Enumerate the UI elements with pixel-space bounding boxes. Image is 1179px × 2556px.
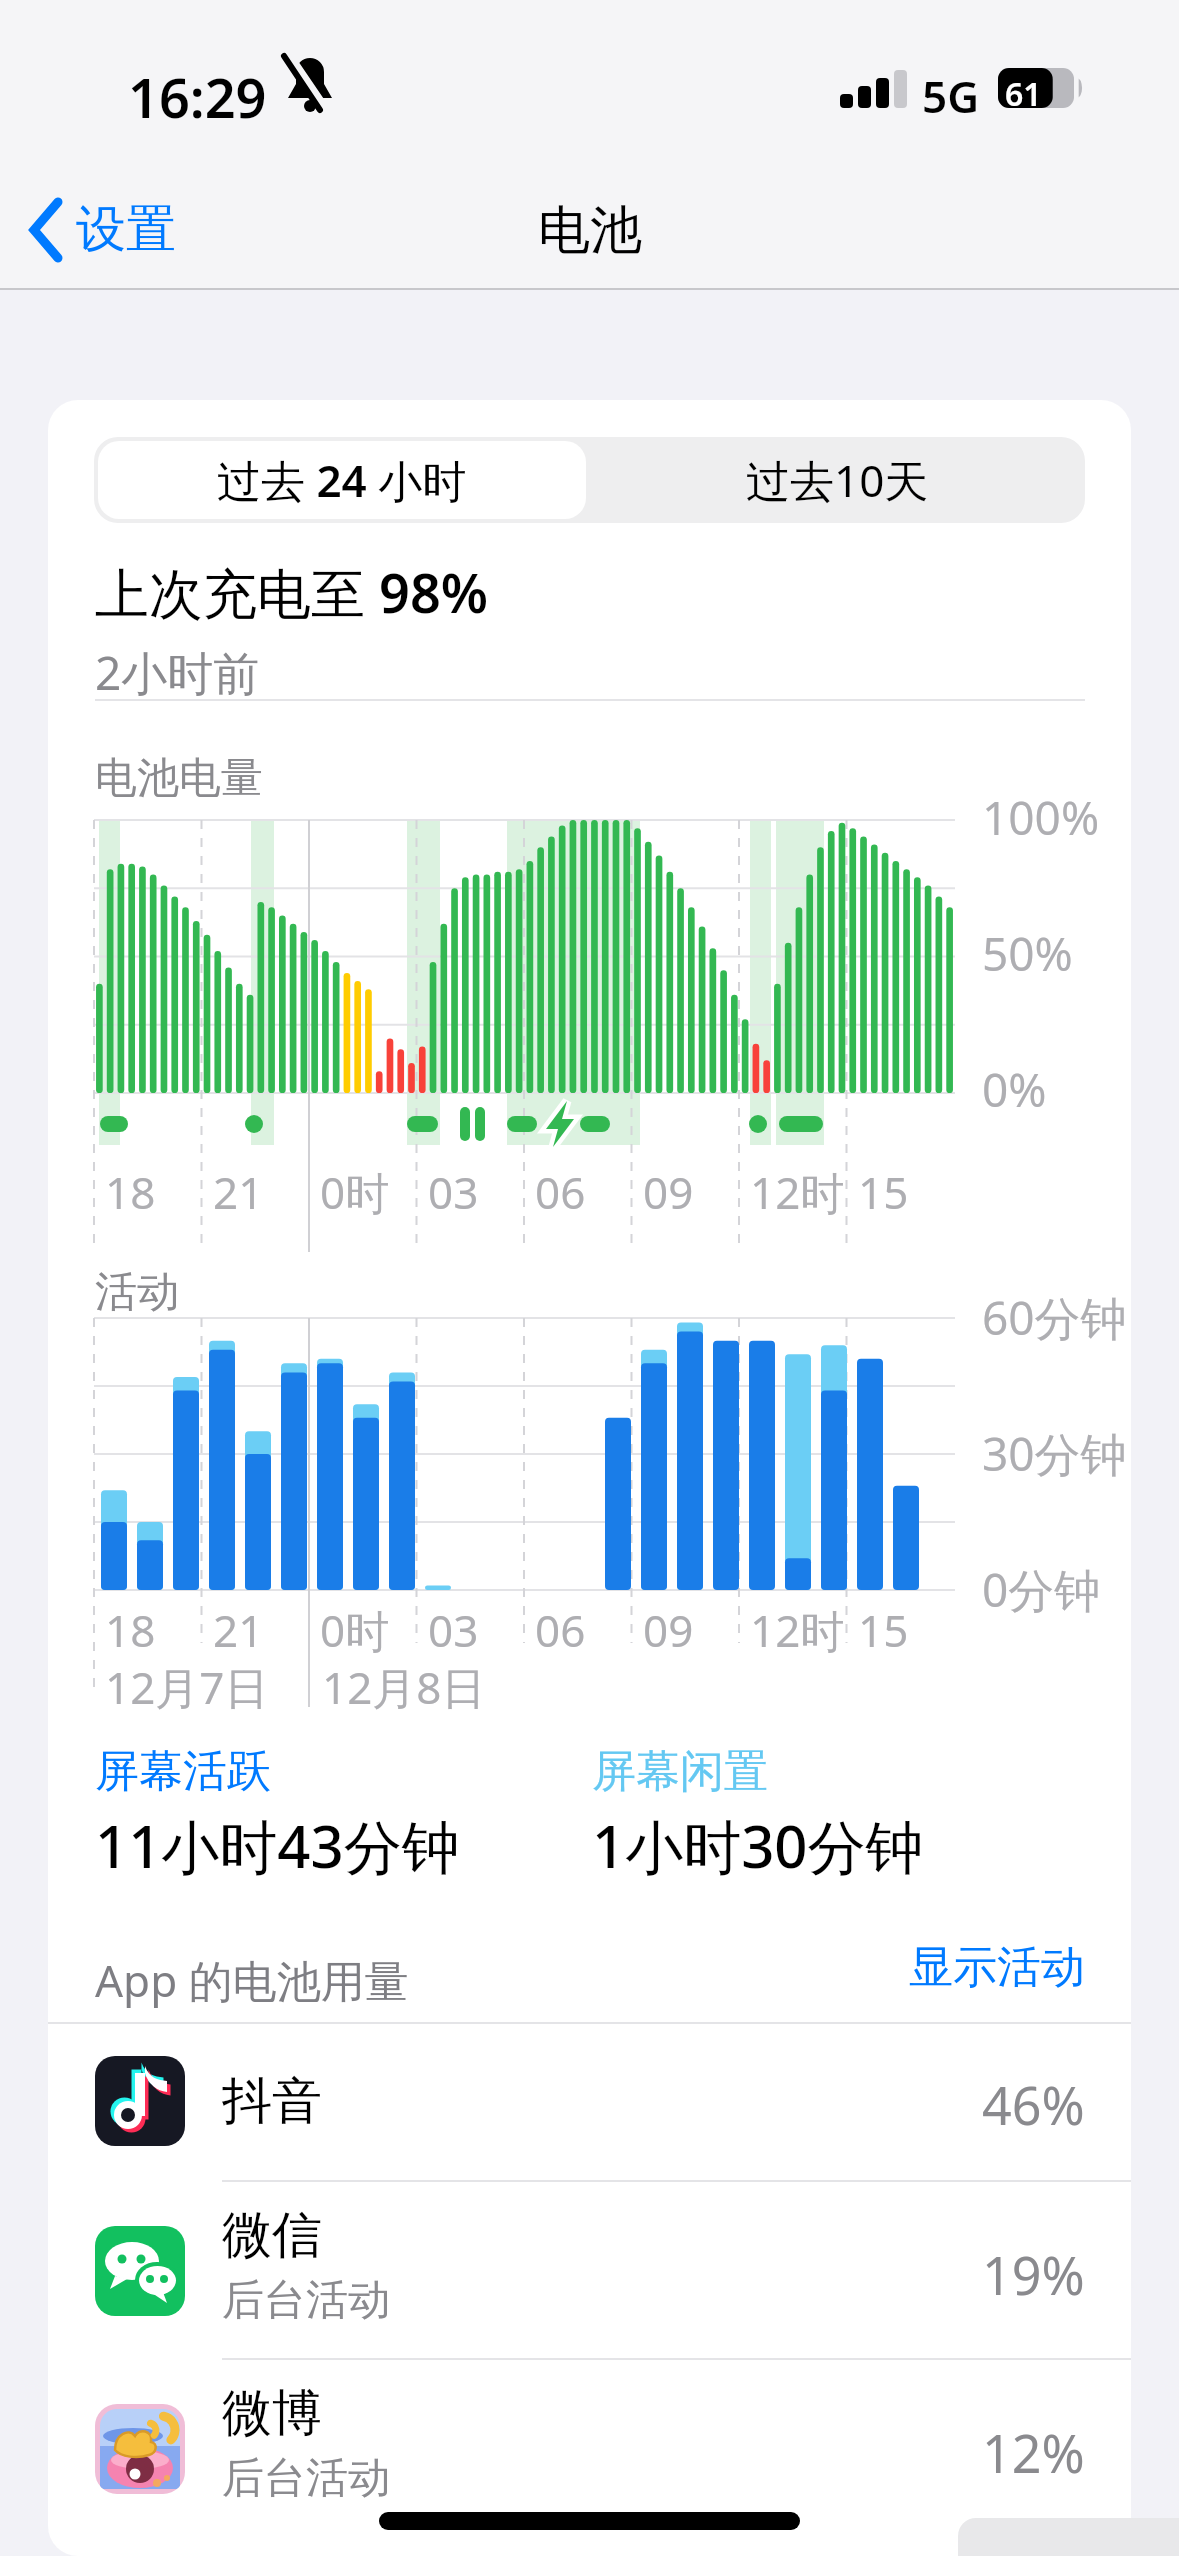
staticText: 12% xyxy=(982,2417,1085,2488)
staticText: 09 xyxy=(643,1600,694,1660)
staticText: 电池 xyxy=(538,198,642,264)
staticText: 0分钟 xyxy=(982,1558,1101,1621)
staticText: 后台活动 xyxy=(222,2274,390,2327)
staticText: 显示活动 xyxy=(909,1940,1085,1995)
staticText: 电池电量 xyxy=(95,752,263,805)
staticText: 03 xyxy=(428,1600,479,1660)
staticText: 12月8日 xyxy=(322,1657,486,1717)
staticText: 18 xyxy=(105,1162,156,1222)
staticText: 50% xyxy=(982,922,1073,985)
staticText: App 的电池用量 xyxy=(95,1950,409,2010)
button[interactable]: 微信 xyxy=(48,2182,1131,2360)
button[interactable]: 设置 xyxy=(24,190,204,270)
staticText: 设置 xyxy=(76,198,176,261)
staticText: 18 xyxy=(105,1600,156,1660)
staticText: 21 xyxy=(213,1162,264,1222)
staticText: 11小时43分钟 xyxy=(95,1806,460,1885)
staticText: 30分钟 xyxy=(982,1422,1127,1485)
staticText: 微信 xyxy=(222,2204,322,2267)
staticText: 上次充电至 98% xyxy=(95,555,489,629)
staticText: 15 xyxy=(858,1600,909,1660)
button[interactable]: 抖音 xyxy=(48,2023,1131,2180)
staticText: 21 xyxy=(213,1600,264,1660)
staticText: 19% xyxy=(982,2239,1085,2310)
staticText: 12时 xyxy=(750,1600,845,1660)
staticText: 活动 xyxy=(95,1266,179,1319)
staticText: 2小时前 xyxy=(95,641,260,704)
staticText: 09 xyxy=(643,1162,694,1222)
staticText: 过去 24 小时 xyxy=(217,450,467,510)
staticText: 微博 xyxy=(222,2382,322,2445)
staticText: 60分钟 xyxy=(982,1286,1127,1349)
staticText: 抖音 xyxy=(222,2070,322,2133)
staticText: 0% xyxy=(982,1058,1047,1121)
staticText: 1小时30分钟 xyxy=(592,1806,924,1885)
staticText: 03 xyxy=(428,1162,479,1222)
staticText: 15 xyxy=(858,1162,909,1222)
staticText: 屏幕活跃 xyxy=(95,1744,271,1799)
staticText: 46% xyxy=(982,2069,1085,2140)
button[interactable]: 显示活动 xyxy=(848,1940,1085,2004)
staticText: 06 xyxy=(535,1600,586,1660)
staticText: 过去10天 xyxy=(746,450,929,510)
staticText: 5G xyxy=(922,66,980,126)
staticText: 屏幕闲置 xyxy=(592,1744,768,1799)
button[interactable]: 微博 xyxy=(48,2360,1131,2538)
button[interactable]: 过去 24 小时 xyxy=(98,441,586,519)
button[interactable]: 过去10天 xyxy=(590,437,1085,523)
staticText: 100% xyxy=(982,786,1100,849)
staticText: 12月7日 xyxy=(105,1657,269,1717)
staticText: 06 xyxy=(535,1162,586,1222)
staticText: 0时 xyxy=(320,1600,390,1660)
staticText: 16:29 xyxy=(128,60,267,134)
staticText: 61 xyxy=(1005,72,1042,116)
staticText: 后台活动 xyxy=(222,2452,390,2505)
staticText: 0时 xyxy=(320,1162,390,1222)
staticText: 12时 xyxy=(750,1162,845,1222)
